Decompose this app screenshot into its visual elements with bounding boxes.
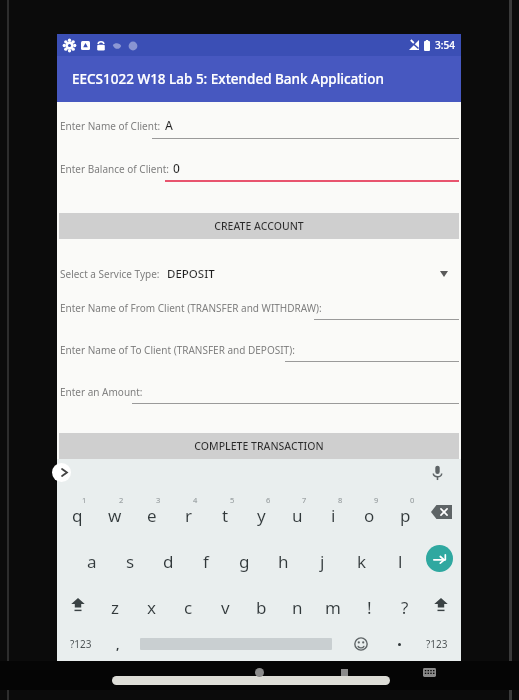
staticText: ? — [401, 596, 409, 619]
staticText: a — [87, 550, 97, 573]
button[interactable]: Enter an Amount: — [57, 384, 461, 408]
button[interactable]: h — [264, 535, 303, 581]
staticText: Enter Name of From Client (TRANSFER and … — [60, 301, 322, 315]
button[interactable]: s — [111, 535, 149, 581]
button[interactable]: ?123 — [59, 627, 102, 661]
staticText: d — [163, 550, 174, 573]
staticText: A — [165, 117, 173, 133]
staticText: l — [398, 550, 403, 573]
button[interactable]: z — [96, 581, 133, 627]
button[interactable]: Enter — [426, 545, 453, 572]
button[interactable]: Enter Balance of Client: — [57, 158, 461, 188]
button[interactable]: Expand suggestions — [52, 463, 71, 482]
staticText: i — [331, 504, 336, 527]
staticText: f — [203, 550, 209, 573]
button[interactable]: x — [133, 581, 170, 627]
staticText: CREATE ACCOUNT — [214, 219, 304, 233]
button[interactable]: Enter Name of To Client (TRANSFER and DE… — [57, 342, 461, 366]
staticText: u — [292, 504, 303, 527]
staticText: Enter an Amount: — [60, 385, 143, 399]
button[interactable]: COMPLETE TRANSACTION — [59, 433, 459, 459]
staticText: e — [147, 504, 157, 527]
staticText: x — [147, 596, 156, 619]
button[interactable]: v — [207, 581, 243, 627]
button[interactable]: CREATE ACCOUNT — [59, 213, 459, 239]
button[interactable]: Keyboard — [421, 664, 437, 680]
button[interactable]: 5 — [207, 489, 243, 535]
button[interactable]: Emoji — [339, 627, 383, 661]
button[interactable]: 3 — [133, 489, 170, 535]
button[interactable]: Select a Service Type: — [57, 262, 461, 286]
staticText: 3:54 — [435, 38, 455, 52]
button[interactable]: 4 — [170, 489, 207, 535]
staticText: n — [292, 596, 303, 619]
staticText: 8 — [338, 495, 343, 505]
staticText: COMPLETE TRANSACTION — [194, 439, 324, 453]
staticText: Enter Name of Client: — [60, 119, 161, 133]
button[interactable]: Space — [133, 627, 339, 661]
button[interactable]: j — [303, 535, 342, 581]
button[interactable]: c — [170, 581, 207, 627]
staticText: 2 — [119, 495, 124, 505]
staticText: g — [239, 550, 250, 573]
button[interactable]: k — [342, 535, 381, 581]
button[interactable]: Voice input — [427, 463, 447, 483]
staticText: m — [325, 596, 341, 619]
button[interactable]: m — [315, 581, 351, 627]
button[interactable]: Backspace — [429, 500, 453, 524]
staticText: z — [111, 596, 119, 619]
button[interactable]: 8 — [315, 489, 351, 535]
button[interactable]: 2 — [96, 489, 133, 535]
staticText: r — [185, 504, 193, 527]
button[interactable]: ?123 — [415, 627, 459, 661]
button[interactable]: f — [187, 535, 225, 581]
button[interactable]: Shift — [423, 581, 459, 627]
staticText: b — [256, 596, 267, 619]
button[interactable]: 0 — [387, 489, 423, 535]
staticText: s — [126, 550, 135, 573]
staticText: 0 — [410, 495, 415, 505]
staticText: Enter Balance of Client: — [60, 162, 169, 176]
button[interactable]: n — [279, 581, 315, 627]
staticText: k — [357, 550, 367, 573]
button[interactable]: Home — [112, 676, 390, 685]
staticText: , — [116, 636, 120, 652]
staticText: 4 — [193, 495, 198, 505]
staticText: v — [221, 596, 230, 619]
staticText: ?123 — [70, 637, 92, 651]
button[interactable]: Enter Name of From Client (TRANSFER and … — [57, 300, 461, 324]
staticText: EECS1022 W18 Lab 5: Extended Bank Applic… — [72, 70, 384, 88]
button[interactable]: ! — [351, 581, 387, 627]
button[interactable]: g — [225, 535, 264, 581]
staticText: j — [320, 550, 325, 573]
staticText: Enter Name of To Client (TRANSFER and DE… — [60, 343, 295, 357]
button[interactable]: 6 — [243, 489, 279, 535]
staticText: o — [364, 504, 375, 527]
button[interactable]: d — [149, 535, 187, 581]
button[interactable]: l — [381, 535, 420, 581]
button[interactable]: 1 — [59, 489, 96, 535]
button[interactable]: Back — [252, 665, 266, 679]
staticText: 1 — [82, 495, 87, 505]
staticText: DEPOSIT — [167, 266, 215, 282]
button[interactable]: Enter Name of Client: — [57, 115, 461, 145]
button[interactable] — [383, 627, 415, 661]
staticText: p — [400, 504, 411, 527]
staticText: Select a Service Type: — [60, 267, 160, 281]
staticText: ?123 — [426, 637, 448, 651]
staticText: 6 — [266, 495, 271, 505]
button[interactable]: Recent apps — [337, 665, 351, 679]
button[interactable]: 7 — [279, 489, 315, 535]
staticText: y — [257, 504, 266, 527]
staticText: 3 — [156, 495, 161, 505]
staticText: h — [278, 550, 289, 573]
staticText: 0 — [173, 160, 180, 176]
button[interactable]: a — [73, 535, 111, 581]
button[interactable]: b — [243, 581, 279, 627]
button[interactable]: Shift — [59, 581, 96, 627]
button[interactable]: , — [102, 627, 133, 661]
button[interactable]: ? — [387, 581, 423, 627]
staticText: q — [72, 504, 83, 527]
button[interactable]: EECS1022 W18 Lab 5: Extended Bank Applic… — [57, 56, 461, 102]
button[interactable]: 9 — [351, 489, 387, 535]
